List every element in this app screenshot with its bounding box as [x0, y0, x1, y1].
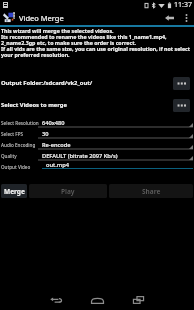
staticText: Merge — [4, 187, 25, 196]
button[interactable]: Select Resolution — [1, 117, 193, 128]
staticText: Select Videos to merge — [1, 101, 67, 109]
staticText: 30 — [42, 130, 49, 138]
staticText: 640x480 — [42, 119, 65, 127]
staticText: 11:37 — [174, 0, 192, 10]
button[interactable]: Browse — [173, 77, 190, 90]
staticText: This wizard will merge the selected vide… — [1, 27, 193, 58]
staticText: Select Resolution — [1, 120, 39, 126]
button[interactable]: Back — [40, 290, 72, 310]
button[interactable]: Browse — [173, 99, 190, 112]
staticText: Quality — [1, 153, 17, 159]
staticText: DEFAULT (bitrate 2097 Kb/s) — [42, 152, 118, 160]
staticText: Audio Encoding — [1, 142, 36, 148]
button[interactable]: Home — [81, 290, 113, 310]
button[interactable]: Quality — [1, 150, 193, 161]
staticText: Select FPS — [1, 131, 24, 137]
staticText: Output Folder:/sdcard/vk2_out/ — [1, 79, 93, 87]
button[interactable]: Recent apps — [122, 290, 154, 310]
button[interactable]: Share — [109, 184, 193, 198]
button[interactable]: Audio Encoding — [1, 139, 193, 150]
staticText: Play — [61, 187, 75, 196]
staticText: Output Video — [1, 164, 31, 170]
button[interactable]: More options — [179, 10, 193, 25]
button[interactable]: Select FPS — [1, 128, 193, 139]
button[interactable]: Back — [160, 10, 179, 25]
button[interactable]: Play — [29, 184, 107, 198]
staticText: Video Merge — [19, 13, 64, 23]
staticText: Share — [142, 187, 161, 196]
staticText: Re-encode — [42, 141, 71, 149]
button[interactable]: Merge — [1, 184, 27, 198]
staticText: out.mp4 — [46, 161, 69, 169]
